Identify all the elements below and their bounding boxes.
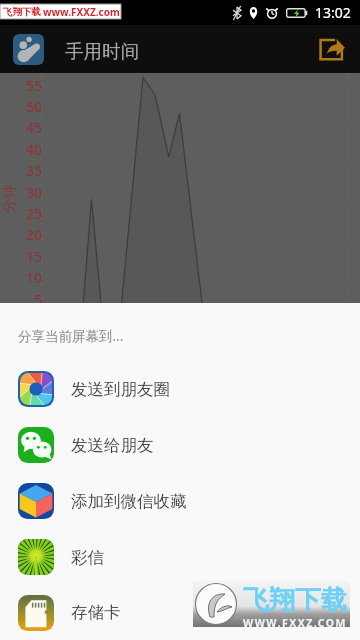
button[interactable]: 存储卡 bbox=[0, 585, 360, 640]
staticText: 彩信 bbox=[71, 547, 104, 568]
button[interactable]: 发送给朋友 bbox=[0, 417, 360, 473]
button[interactable]: 彩信 bbox=[0, 529, 360, 585]
staticText: www.FXXZ.com bbox=[43, 5, 120, 19]
staticText: 发送到朋友圈 bbox=[71, 379, 170, 400]
staticText: 25 bbox=[16, 204, 42, 223]
staticText: 35 bbox=[16, 161, 42, 180]
staticText: 40 bbox=[16, 140, 42, 159]
staticText: 20 bbox=[16, 225, 42, 244]
staticText: 45 bbox=[16, 118, 42, 137]
staticText: 手用时间 bbox=[65, 40, 139, 63]
staticText: 分钟 bbox=[1, 185, 19, 213]
button[interactable]: 添加到微信收藏 bbox=[0, 473, 360, 529]
staticText: 55 bbox=[16, 76, 42, 95]
staticText: WWW.FXXZ.COM bbox=[243, 616, 347, 630]
staticText: 50 bbox=[16, 97, 42, 116]
staticText: 13:02 bbox=[315, 3, 351, 22]
button[interactable]: Share bbox=[310, 27, 354, 71]
staticText: 15 bbox=[16, 247, 42, 266]
staticText: 5 bbox=[16, 290, 42, 309]
staticText: 飞翔下载 bbox=[243, 584, 347, 617]
staticText: 飞翔下载 bbox=[3, 6, 41, 18]
staticText: 发送给朋友 bbox=[71, 435, 154, 456]
staticText: 分享当前屏幕到... bbox=[18, 327, 124, 345]
button[interactable]: 发送到朋友圈 bbox=[0, 361, 360, 417]
staticText: 10 bbox=[16, 268, 42, 287]
staticText: 添加到微信收藏 bbox=[71, 491, 187, 512]
staticText: 30 bbox=[16, 183, 42, 202]
staticText: 存储卡 bbox=[71, 602, 121, 623]
